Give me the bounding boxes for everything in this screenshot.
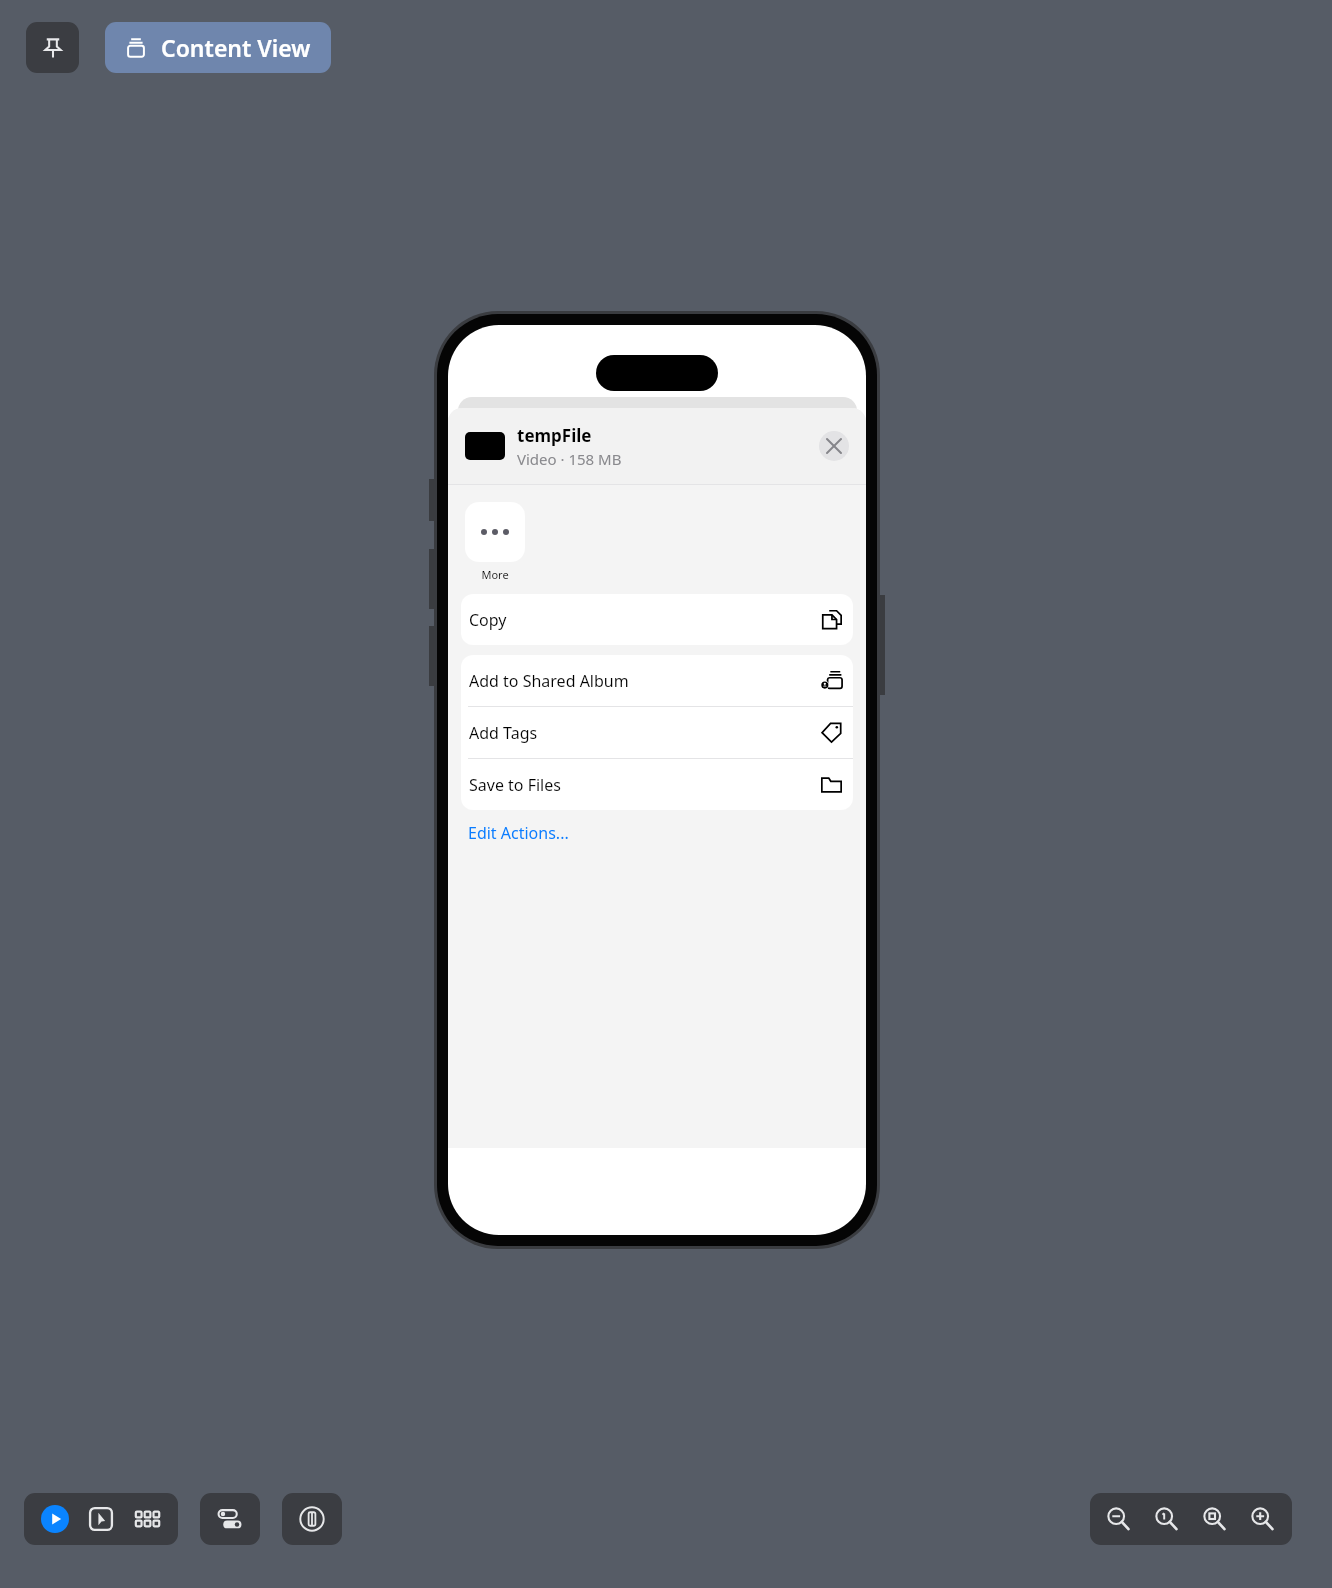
button[interactable]: Zoom to fit	[1198, 1502, 1232, 1536]
button[interactable]: Select	[86, 1504, 116, 1534]
staticText: Content View	[161, 32, 311, 63]
button[interactable]: Close	[819, 431, 849, 461]
staticText: Add Tags	[469, 722, 820, 744]
button[interactable]: Zoom in	[1246, 1502, 1280, 1536]
button[interactable]: Device settings	[282, 1493, 342, 1545]
button[interactable]: Preview settings	[200, 1493, 260, 1545]
staticText: tempFile	[517, 424, 592, 447]
staticText: Edit Actions...	[468, 822, 569, 844]
staticText: Video · 158 MB	[517, 449, 622, 469]
button[interactable]: Pin preview	[26, 22, 79, 73]
button[interactable]: Save to Files	[461, 759, 853, 810]
staticText: Add to Shared Album	[469, 670, 820, 692]
button[interactable]: Copy	[461, 594, 853, 645]
button[interactable]: Play preview	[40, 1504, 70, 1534]
staticText: Copy	[469, 609, 820, 631]
button[interactable]: Edit Actions...	[461, 819, 853, 850]
button[interactable]: Zoom to 100%	[1150, 1502, 1184, 1536]
button[interactable]: Content View	[105, 22, 331, 73]
button[interactable]: Add Tags	[461, 707, 853, 758]
button[interactable]: Add to Shared Album	[461, 655, 853, 706]
button[interactable]: Variants	[132, 1504, 162, 1534]
staticText: Save to Files	[469, 774, 820, 796]
button[interactable]: Zoom out	[1102, 1502, 1136, 1536]
staticText: More	[481, 567, 509, 582]
button[interactable]: More	[465, 502, 525, 582]
